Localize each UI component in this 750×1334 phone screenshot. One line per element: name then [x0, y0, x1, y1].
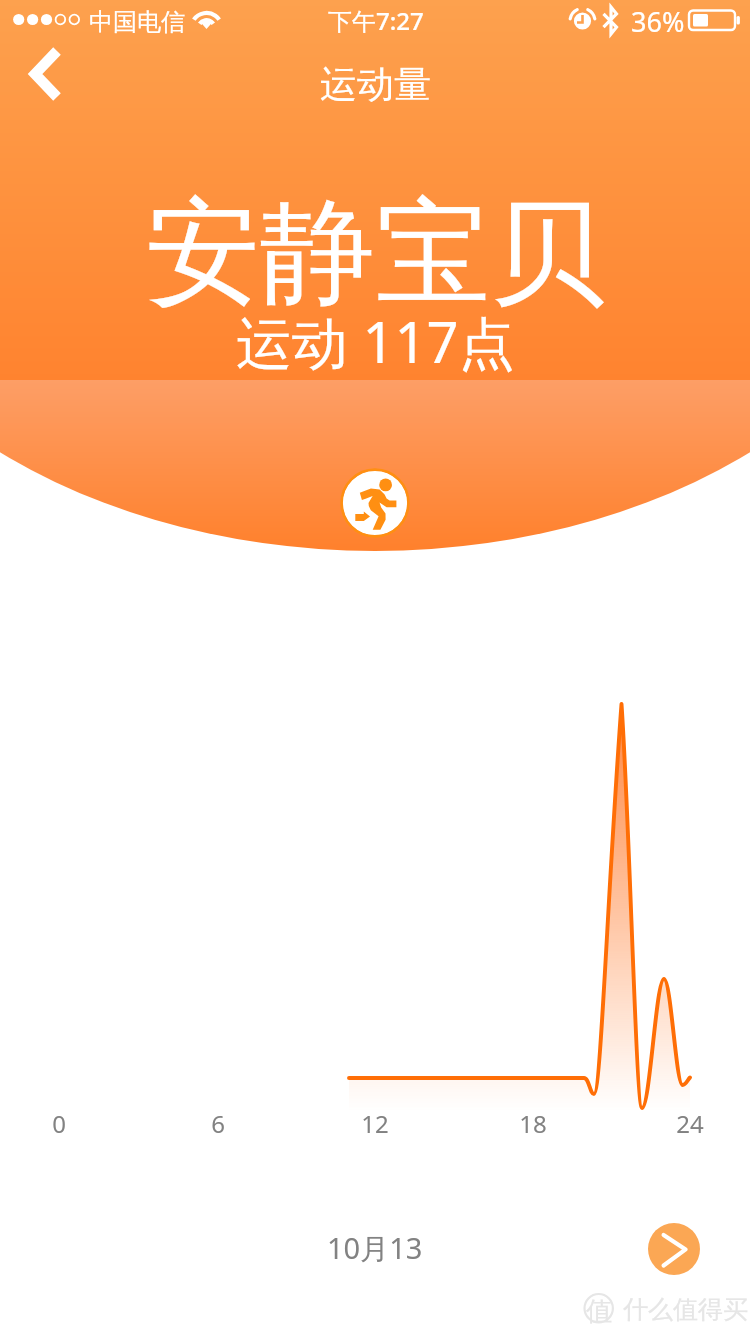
staticText: 0: [34, 1107, 84, 1140]
staticText: 值: [586, 1295, 612, 1328]
button[interactable]: Next day: [648, 1223, 700, 1275]
staticText: 运动 117点: [236, 303, 515, 379]
button[interactable]: Back: [4, 40, 76, 112]
staticText: 安静宝贝: [145, 181, 605, 326]
staticText: 中国电信: [89, 7, 185, 37]
staticText: 运动量: [320, 61, 431, 108]
staticText: 18: [508, 1107, 558, 1140]
staticText: 什么值得买: [623, 1294, 748, 1325]
staticText: 10月13: [327, 1228, 423, 1268]
staticText: 36%: [631, 3, 685, 40]
staticText: 12: [350, 1107, 400, 1140]
staticText: 6: [193, 1107, 243, 1140]
staticText: 24: [665, 1107, 715, 1140]
staticText: 下午7:27: [328, 4, 424, 37]
button[interactable]: Activity: [341, 469, 409, 537]
